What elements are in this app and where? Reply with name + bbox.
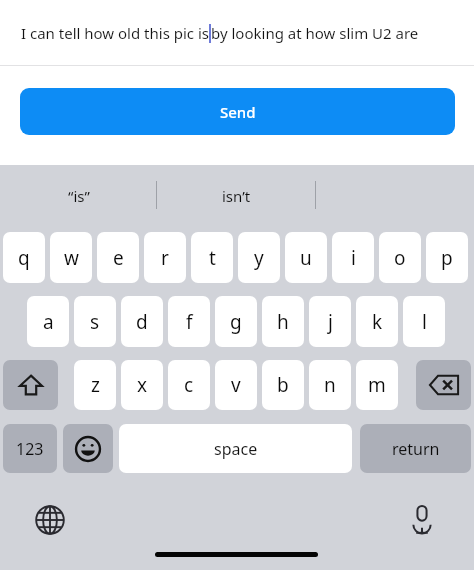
button[interactable]: I can tell how old this pic is	[0, 0, 474, 65]
staticText: t	[209, 245, 216, 271]
staticText: a	[43, 309, 54, 335]
staticText: p	[441, 245, 453, 271]
button[interactable]: Backspace	[416, 360, 471, 410]
button[interactable]: isn’t	[158, 168, 315, 223]
staticText: w	[64, 245, 79, 271]
button[interactable]: Dictation	[400, 498, 444, 542]
button[interactable]: Shift	[3, 360, 58, 410]
button[interactable]: 123	[3, 424, 57, 473]
button[interactable]: g	[215, 296, 257, 347]
staticText: y	[254, 245, 264, 271]
staticText: x	[137, 372, 148, 398]
staticText: c	[184, 372, 194, 398]
button[interactable]: p	[426, 232, 468, 283]
staticText: s	[90, 309, 100, 335]
staticText: g	[230, 309, 242, 335]
button[interactable]: e	[97, 232, 139, 283]
button[interactable]: return	[360, 424, 471, 473]
button[interactable]: y	[238, 232, 280, 283]
button[interactable]: r	[144, 232, 186, 283]
staticText: i	[351, 245, 356, 271]
button[interactable]: b	[262, 360, 304, 410]
button[interactable]: m	[356, 360, 398, 410]
button[interactable]: s	[74, 296, 116, 347]
staticText: u	[300, 245, 312, 271]
button[interactable]: j	[309, 296, 351, 347]
staticText: n	[324, 372, 336, 398]
button[interactable]: c	[168, 360, 210, 410]
button[interactable]: u	[285, 232, 327, 283]
staticText: m	[368, 372, 386, 398]
staticText: d	[136, 309, 148, 335]
button[interactable]: Change keyboard	[28, 498, 72, 542]
staticText: r	[161, 245, 169, 271]
button[interactable]: n	[309, 360, 351, 410]
staticText: b	[277, 372, 289, 398]
staticText: j	[328, 309, 333, 335]
staticText: h	[277, 309, 289, 335]
staticText: z	[91, 372, 100, 398]
staticText: q	[18, 245, 30, 271]
staticText: Send	[220, 102, 256, 122]
button[interactable]: d	[121, 296, 163, 347]
staticText: 123	[16, 438, 44, 460]
staticText: “is”	[68, 186, 90, 206]
button[interactable]: a	[27, 296, 69, 347]
button[interactable]: t	[191, 232, 233, 283]
button[interactable]: o	[379, 232, 421, 283]
staticText: return	[392, 438, 440, 460]
button[interactable]: f	[168, 296, 210, 347]
button[interactable]: l	[403, 296, 445, 347]
staticText: f	[186, 309, 193, 335]
button[interactable]: Send	[20, 88, 455, 135]
button[interactable]: z	[74, 360, 116, 410]
button[interactable]: i	[332, 232, 374, 283]
button[interactable]: w	[50, 232, 92, 283]
button[interactable]: “is”	[0, 168, 157, 223]
staticText: I can tell how old this pic is	[21, 23, 209, 43]
staticText: v	[231, 372, 241, 398]
staticText: l	[422, 309, 427, 335]
staticText: by looking at how slim U2 are	[211, 23, 419, 43]
button[interactable]: k	[356, 296, 398, 347]
staticText: o	[394, 245, 406, 271]
button[interactable]: h	[262, 296, 304, 347]
staticText: k	[372, 309, 383, 335]
staticText: e	[113, 245, 124, 271]
button[interactable]: q	[3, 232, 45, 283]
button[interactable]: Emoji	[63, 424, 113, 473]
button[interactable]: v	[215, 360, 257, 410]
button[interactable]: space	[119, 424, 352, 473]
button[interactable]: x	[121, 360, 163, 410]
staticText: isn’t	[222, 186, 251, 206]
staticText: space	[214, 438, 258, 460]
